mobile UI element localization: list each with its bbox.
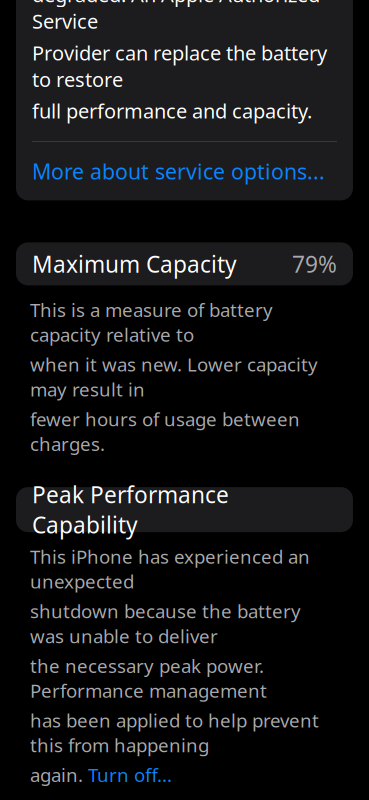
button[interactable]: More about service options...	[32, 142, 337, 188]
staticText: More about service options...	[32, 157, 325, 185]
staticText: degraded. An Apple Authorized Service	[32, 0, 320, 34]
staticText: This iPhone has experienced an unexpecte…	[30, 544, 310, 594]
button[interactable]: Maximum Capacity	[16, 242, 353, 285]
staticText: 79%	[292, 249, 337, 279]
staticText: Maximum Capacity	[32, 249, 237, 279]
staticText: when it was new. Lower capacity may resu…	[30, 352, 318, 402]
staticText: fewer hours of usage between charges.	[30, 406, 300, 456]
staticText: has been applied to help prevent this fr…	[30, 708, 319, 757]
staticText: again.	[30, 762, 83, 787]
staticText: Peak Performance Capability	[32, 479, 229, 540]
staticText: full performance and capacity.	[32, 97, 312, 124]
staticText: This is a measure of battery capacity re…	[30, 297, 273, 347]
staticText: Turn off...	[88, 762, 172, 787]
staticText: Provider can replace the battery to rest…	[32, 39, 327, 92]
staticText: shutdown because the battery was unable …	[30, 599, 301, 648]
button[interactable]: Turn off...	[88, 762, 172, 787]
staticText: the necessary peak power. Performance ma…	[30, 653, 267, 703]
